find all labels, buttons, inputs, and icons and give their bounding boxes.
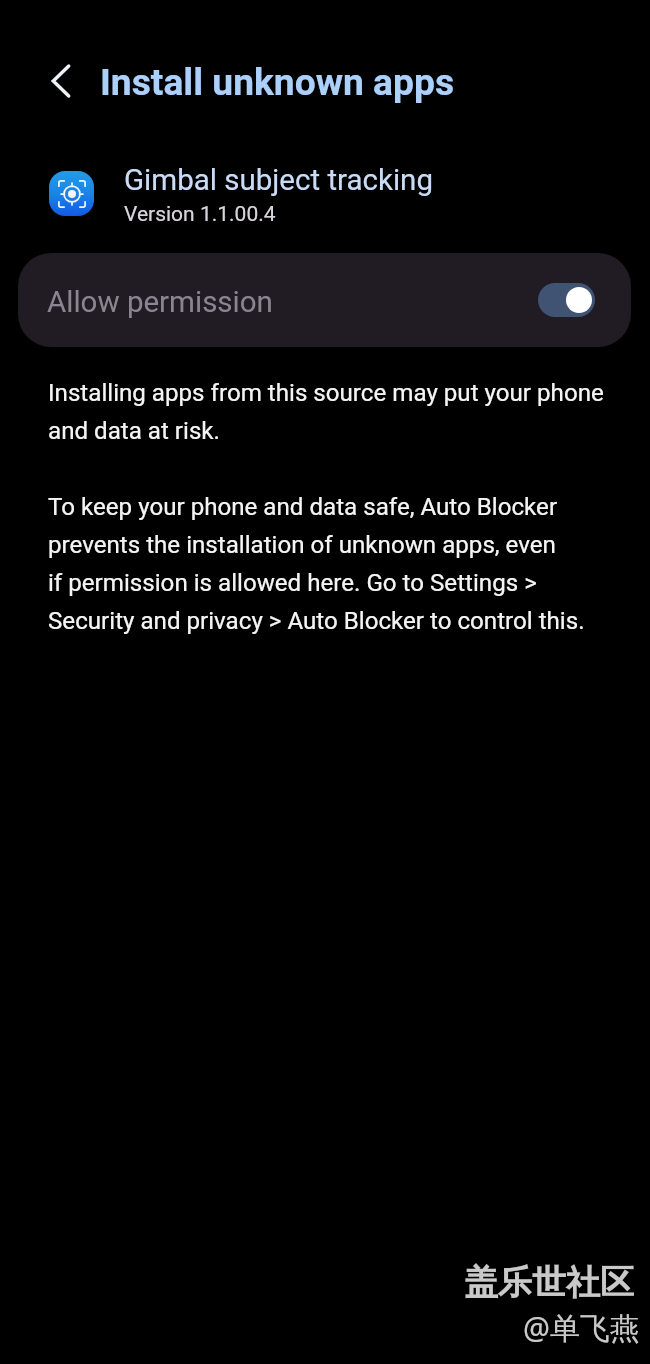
staticText: To keep your phone and data safe, Auto B… <box>48 493 585 635</box>
staticText: Version 1.1.00.4 <box>124 202 276 227</box>
button[interactable]: Navigate up <box>37 57 85 105</box>
button[interactable]: Allow permission <box>538 283 595 317</box>
staticText: Allow permission <box>47 285 273 320</box>
staticText: 盖乐世社区 <box>464 1261 634 1304</box>
staticText: Gimbal subject tracking <box>124 163 433 198</box>
staticText: @单飞燕 <box>523 1307 640 1348</box>
staticText: Installing apps from this source may put… <box>48 379 604 445</box>
staticText: Install unknown apps <box>100 60 455 104</box>
button[interactable]: Allow permission <box>18 253 631 347</box>
